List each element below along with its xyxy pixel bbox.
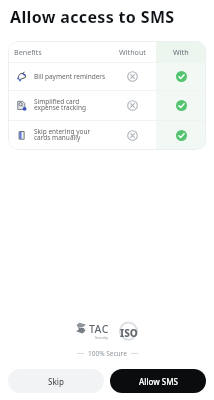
staticText: expense tracking [34, 103, 86, 112]
staticText: Skip [48, 376, 64, 387]
staticText: Allow SMS [139, 376, 178, 387]
staticText: Skip entering your [34, 127, 91, 136]
staticText: Allow access to SMS [10, 6, 175, 28]
staticText: cards manually [34, 133, 81, 142]
staticText: With [173, 47, 189, 57]
staticText: ISO [120, 326, 138, 340]
staticText: Bill payment reminders [34, 72, 106, 81]
button[interactable]: Skip entering your [8, 121, 206, 150]
button[interactable]: Simplified card [8, 91, 206, 120]
staticText: TAC [89, 322, 109, 336]
staticText: Security [95, 335, 109, 340]
staticText: Simplified card [34, 97, 80, 106]
staticText: 100% Secure [88, 349, 127, 358]
button[interactable]: Allow SMS [110, 369, 206, 393]
staticText: Without [119, 47, 146, 57]
button[interactable]: Bill payment reminders [8, 63, 206, 90]
button[interactable]: Skip [8, 369, 104, 393]
staticText: Benefits [14, 47, 109, 57]
